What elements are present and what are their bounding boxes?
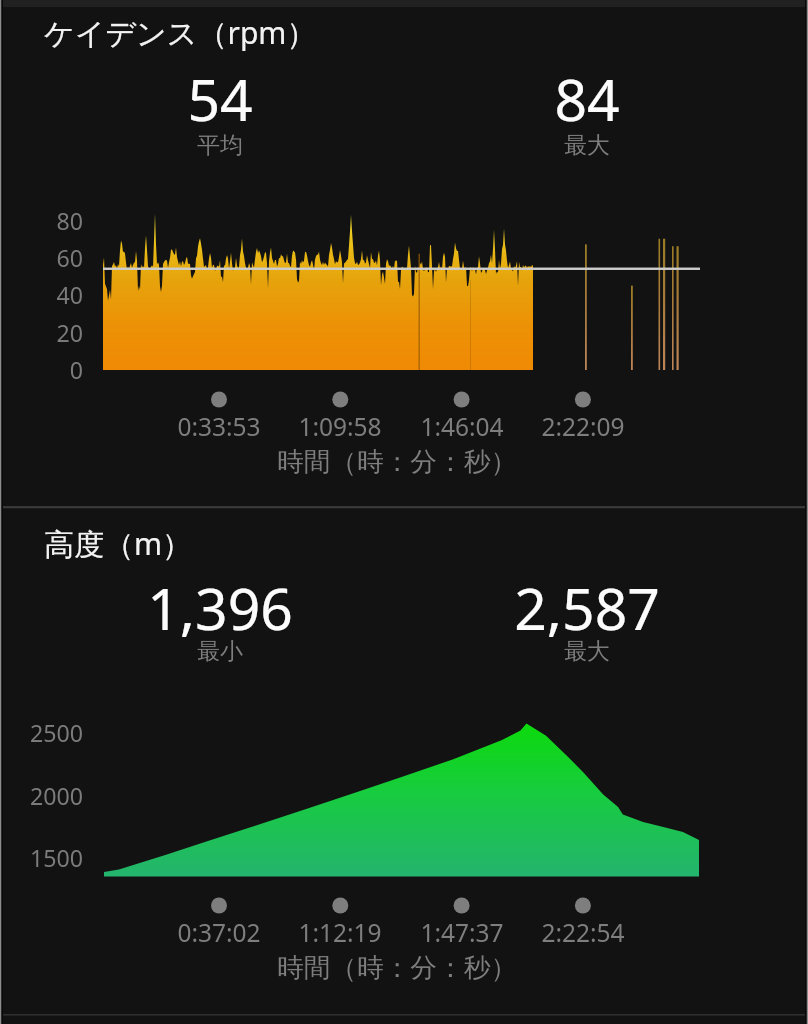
staticText: 2:22:09 [513,410,653,443]
staticText: 最大 [437,637,737,666]
staticText: 2000 [0,780,83,812]
staticText: 時間（時：分：秒） [197,445,597,479]
staticText: 2500 [0,717,83,749]
button[interactable]: 高度（m）のグラフ [0,508,808,1024]
staticText: 2:22:54 [513,916,653,949]
staticText: 20 [0,317,83,349]
staticText: 1:46:04 [392,410,532,443]
staticText: 時間（時：分：秒） [197,951,597,985]
staticText: ケイデンス（rpm） [44,12,317,53]
staticText: 60 [0,242,83,274]
button[interactable]: ケイデンス（rpm）のグラフ [0,0,808,506]
staticText: 40 [0,279,83,311]
staticText: 2,587 [437,569,737,647]
staticText: 1:09:58 [270,410,410,443]
staticText: 最大 [437,131,737,160]
staticText: 0 [0,354,83,386]
staticText: 1,396 [70,569,370,647]
staticText: 1:47:37 [392,916,532,949]
staticText: 平均 [70,131,370,160]
staticText: 84 [437,60,737,138]
staticText: 0:37:02 [149,916,289,949]
staticText: 1:12:19 [270,916,410,949]
staticText: 高度（m） [44,523,193,564]
staticText: 最小 [70,637,370,666]
staticText: 1500 [0,842,83,874]
staticText: 0:33:53 [149,410,289,443]
staticText: 80 [0,205,83,237]
staticText: 54 [70,60,370,138]
